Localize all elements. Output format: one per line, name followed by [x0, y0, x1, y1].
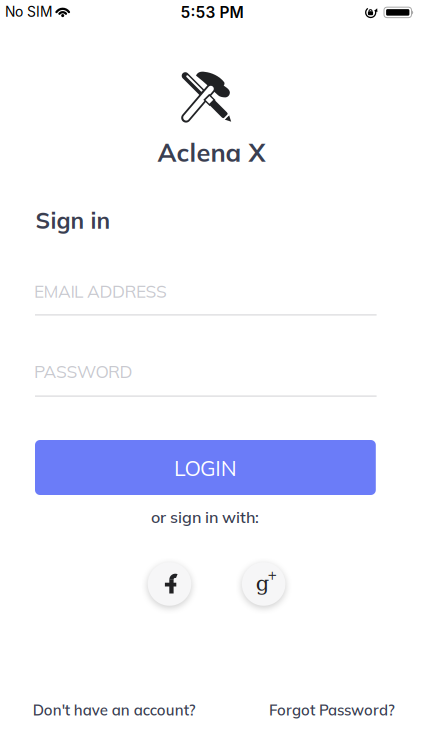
staticText: No SIM — [5, 3, 53, 20]
button[interactable]: Sign in with Facebook — [148, 562, 191, 606]
button[interactable]: Forgot Password? — [269, 701, 395, 719]
button[interactable]: LOGIN — [35, 440, 376, 495]
staticText: or sign in with: — [151, 507, 259, 527]
button[interactable]: Don't have an account? — [33, 701, 196, 719]
staticText: g — [256, 571, 269, 596]
staticText: Don't have an account? — [33, 701, 196, 719]
staticText: PASSWORD — [34, 361, 132, 382]
staticText: Sign in — [35, 206, 110, 234]
button[interactable]: EMAIL ADDRESS — [35, 270, 377, 316]
staticText: EMAIL ADDRESS — [34, 280, 167, 302]
button[interactable]: Sign in with Google — [242, 562, 285, 606]
staticText: LOGIN — [174, 455, 237, 481]
staticText: 5:53 PM — [180, 3, 243, 22]
button[interactable]: PASSWORD — [35, 351, 377, 397]
staticText: Aclena X — [157, 136, 265, 168]
staticText: Forgot Password? — [269, 701, 395, 719]
staticText: + — [267, 568, 277, 582]
